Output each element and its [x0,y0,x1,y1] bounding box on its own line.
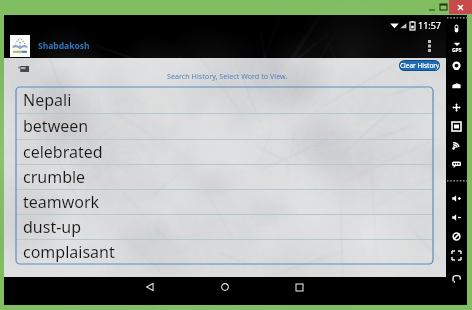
button[interactable]: Location [446,57,467,75]
staticText: 11:57 [418,19,442,31]
staticText: crumble [23,166,86,188]
staticText: between [23,115,89,137]
button[interactable]: Home [187,277,262,297]
staticText: Shabdakosh [38,40,90,52]
button[interactable]: Fullscreen [446,246,467,264]
staticText: dust-up [23,216,82,238]
button[interactable]: Power [446,19,467,37]
staticText: Search History, Select Word to View. [167,71,288,81]
button[interactable]: Move [446,98,467,116]
button[interactable]: between [16,113,433,139]
button[interactable]: Cellular [446,136,467,154]
button[interactable]: celebrated [16,139,433,164]
button[interactable]: Messages [446,155,467,173]
button[interactable]: Maximize [437,0,450,14]
button[interactable]: complaisant [16,239,433,264]
staticText: Nepali [23,89,72,111]
button[interactable]: GPS [446,38,467,56]
button[interactable]: Nepali [16,87,433,113]
button[interactable]: Clear History [400,61,439,70]
button[interactable]: Rotate [446,227,467,245]
button[interactable]: Minimize [424,0,440,15]
button[interactable]: Device ID [446,117,467,135]
staticText: Clear History [400,61,439,70]
button[interactable]: Volume down [446,208,467,226]
staticText: GPS [452,47,462,54]
button[interactable]: Camera [446,76,467,94]
button[interactable]: More options [417,33,442,58]
staticText: celebrated [23,141,103,163]
button[interactable]: crumble [16,164,433,189]
button[interactable]: Back [112,277,187,297]
button[interactable]: teamwork [16,189,433,214]
button[interactable]: dust-up [16,214,433,239]
button[interactable]: Recent apps [262,277,337,297]
button[interactable]: Close [449,0,472,14]
button[interactable]: App logo [10,35,30,57]
button[interactable]: Volume up [446,189,467,207]
staticText: complaisant [23,241,115,263]
staticText: teamwork [23,191,100,213]
button[interactable]: Back [446,269,467,287]
